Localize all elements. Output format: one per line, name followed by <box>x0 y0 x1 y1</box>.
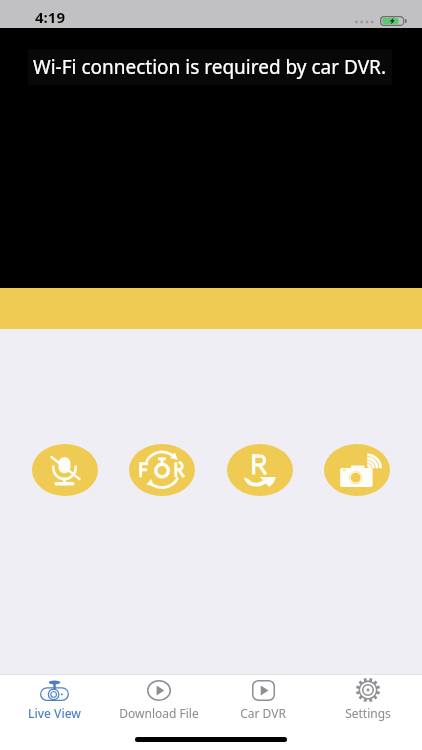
button[interactable]: Settings <box>318 679 418 721</box>
button[interactable]: Live View <box>4 679 104 721</box>
staticText: Live View <box>28 705 81 721</box>
button[interactable]: Download File <box>109 679 209 721</box>
button[interactable]: Take snapshot <box>324 444 390 496</box>
button[interactable]: Record <box>227 444 293 496</box>
staticText: Download File <box>119 705 199 721</box>
staticText: Car DVR <box>240 705 286 721</box>
staticText: Settings <box>345 705 391 721</box>
staticText: 4:19 <box>35 7 65 27</box>
staticText: Wi-Fi connection is required by car DVR. <box>33 54 387 80</box>
button[interactable]: Format SD card <box>129 444 195 496</box>
button[interactable]: Car DVR <box>213 679 313 721</box>
button[interactable]: Mute microphone <box>32 444 98 496</box>
